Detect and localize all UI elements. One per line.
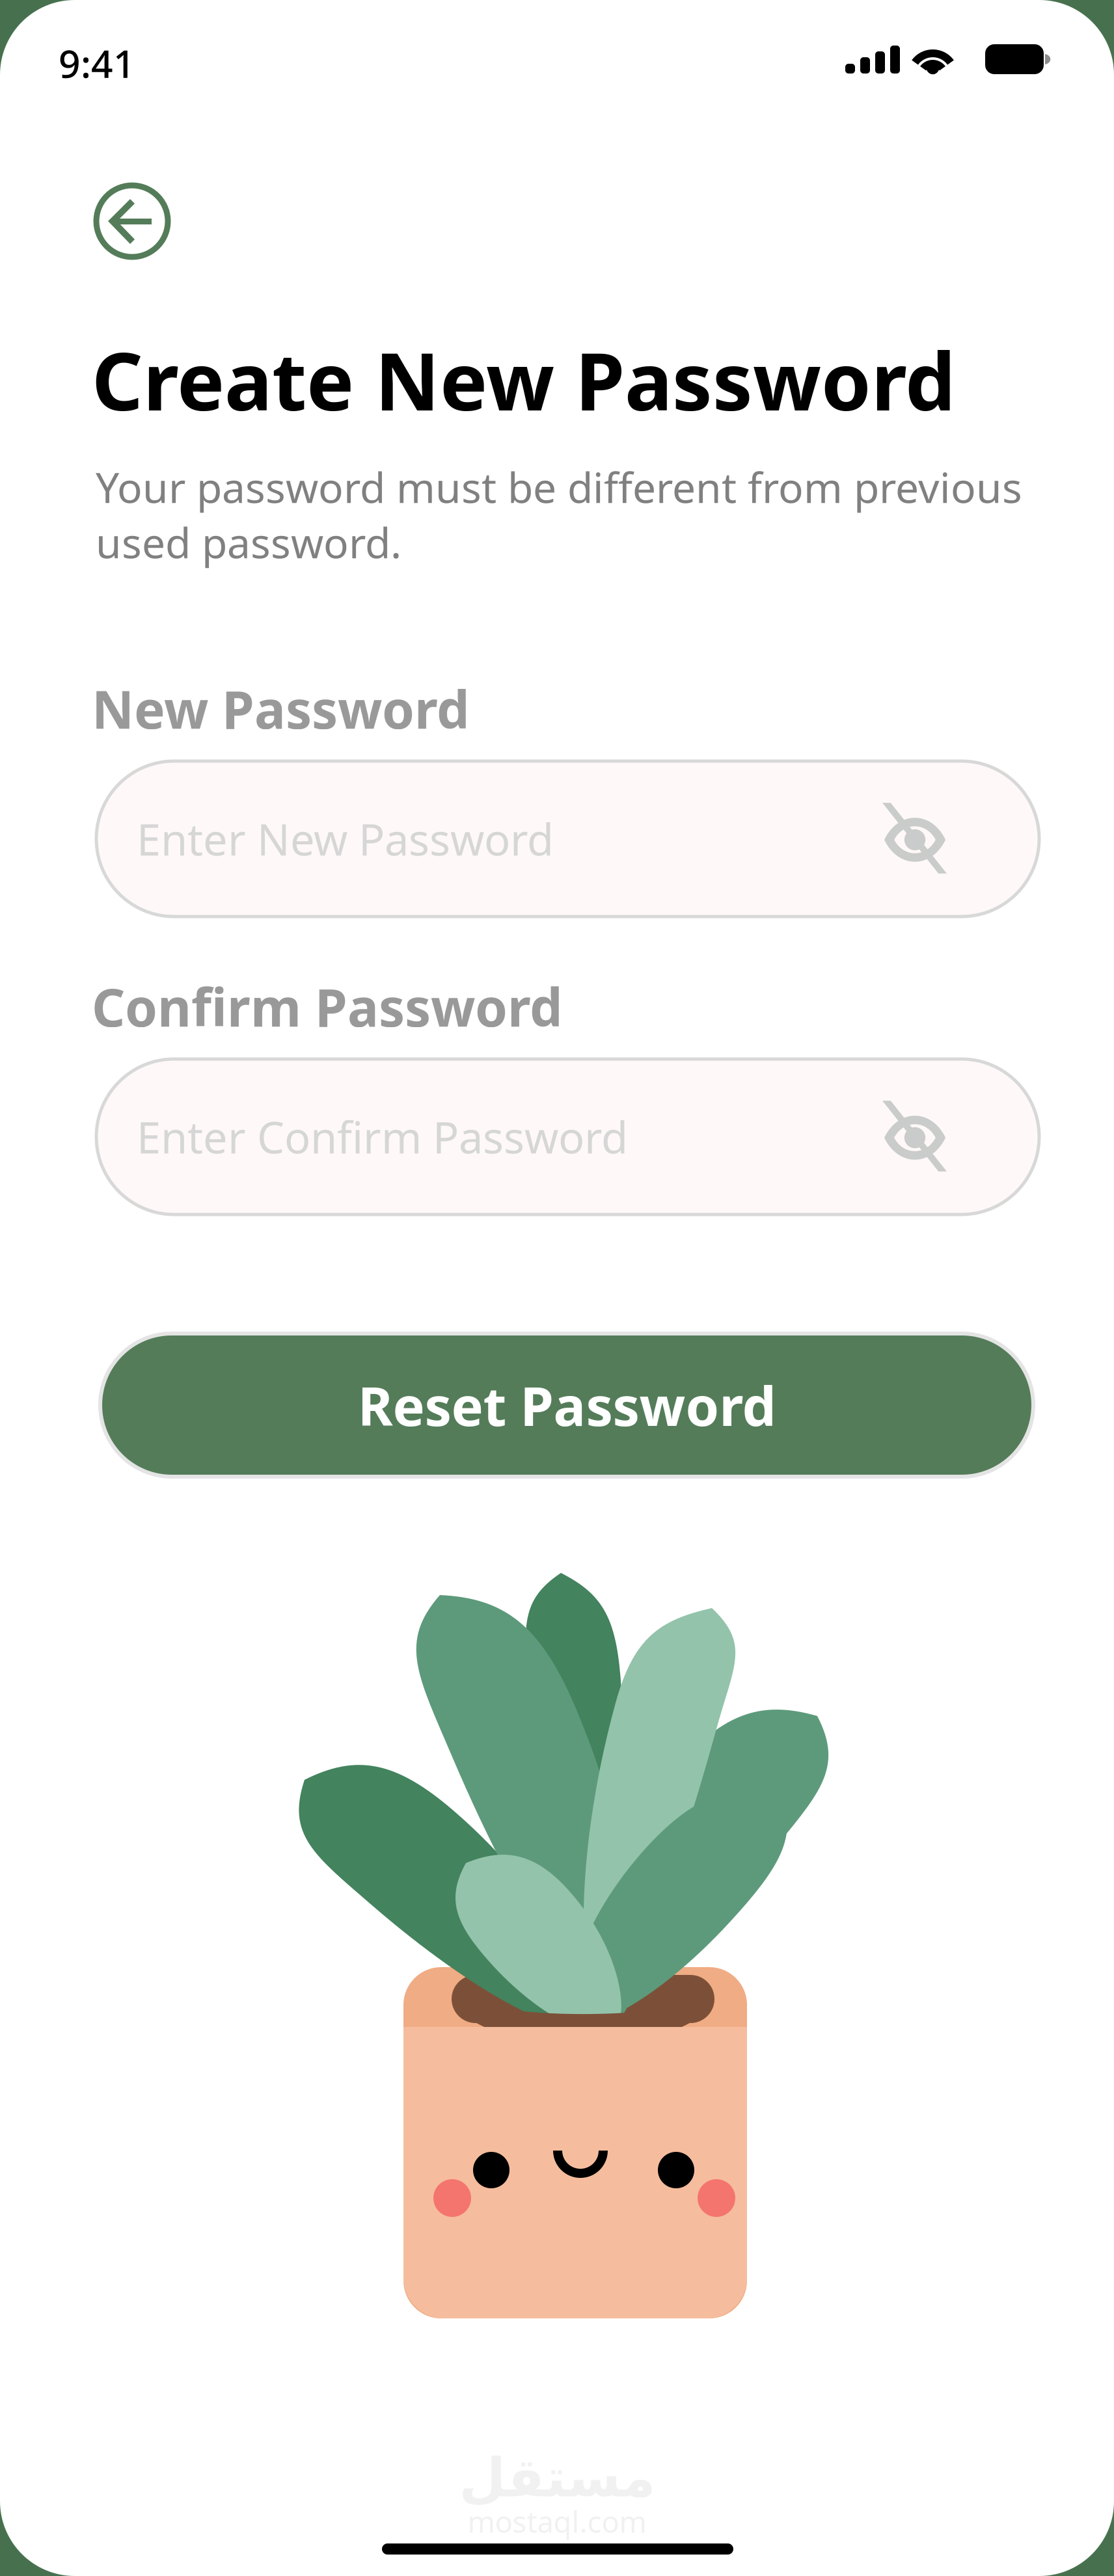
- staticText: mostaql.com: [468, 2502, 646, 2541]
- button[interactable]: New Password: [0, 0, 943, 155]
- staticText: Confirm Password: [92, 972, 563, 1041]
- staticText: Your password must be different from pre…: [96, 459, 1022, 570]
- staticText: Enter New Password: [137, 810, 554, 868]
- staticText: Create New Password: [92, 327, 956, 433]
- staticText: مستقل: [459, 2447, 655, 2508]
- staticText: New Password: [92, 674, 470, 743]
- staticText: Enter Confirm Password: [137, 1108, 628, 1166]
- staticText: 9:41: [59, 38, 135, 88]
- button[interactable]: Confirm Password: [0, 0, 943, 155]
- staticText: Reset Password: [358, 1369, 776, 1441]
- button[interactable]: Back: [0, 0, 72, 72]
- button[interactable]: Reset Password: [0, 0, 933, 143]
